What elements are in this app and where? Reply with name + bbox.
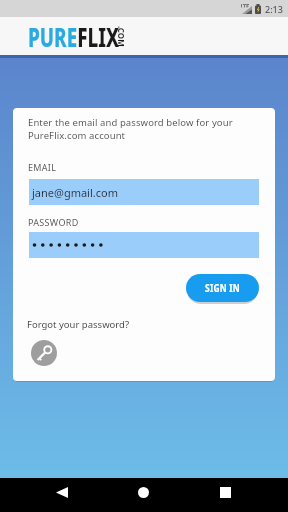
staticText: .COM bbox=[116, 26, 127, 47]
button[interactable] bbox=[56, 487, 68, 498]
staticText: 2:13 bbox=[265, 3, 283, 15]
staticText: jane@gmail.com bbox=[32, 185, 118, 200]
button[interactable] bbox=[138, 487, 149, 498]
staticText: PUREFLIX bbox=[28, 18, 120, 55]
button[interactable]: jane@gmail.com bbox=[29, 179, 259, 205]
staticText: EMAIL bbox=[28, 161, 57, 173]
button[interactable] bbox=[31, 340, 57, 366]
button[interactable]: SIGN IN bbox=[186, 274, 259, 302]
button[interactable]: Forgot your password? bbox=[27, 318, 130, 331]
staticText: PASSWORD bbox=[28, 216, 79, 228]
staticText: Enter the email and password below for y… bbox=[28, 116, 233, 142]
button[interactable] bbox=[29, 232, 259, 258]
staticText: SIGN IN bbox=[205, 281, 240, 295]
